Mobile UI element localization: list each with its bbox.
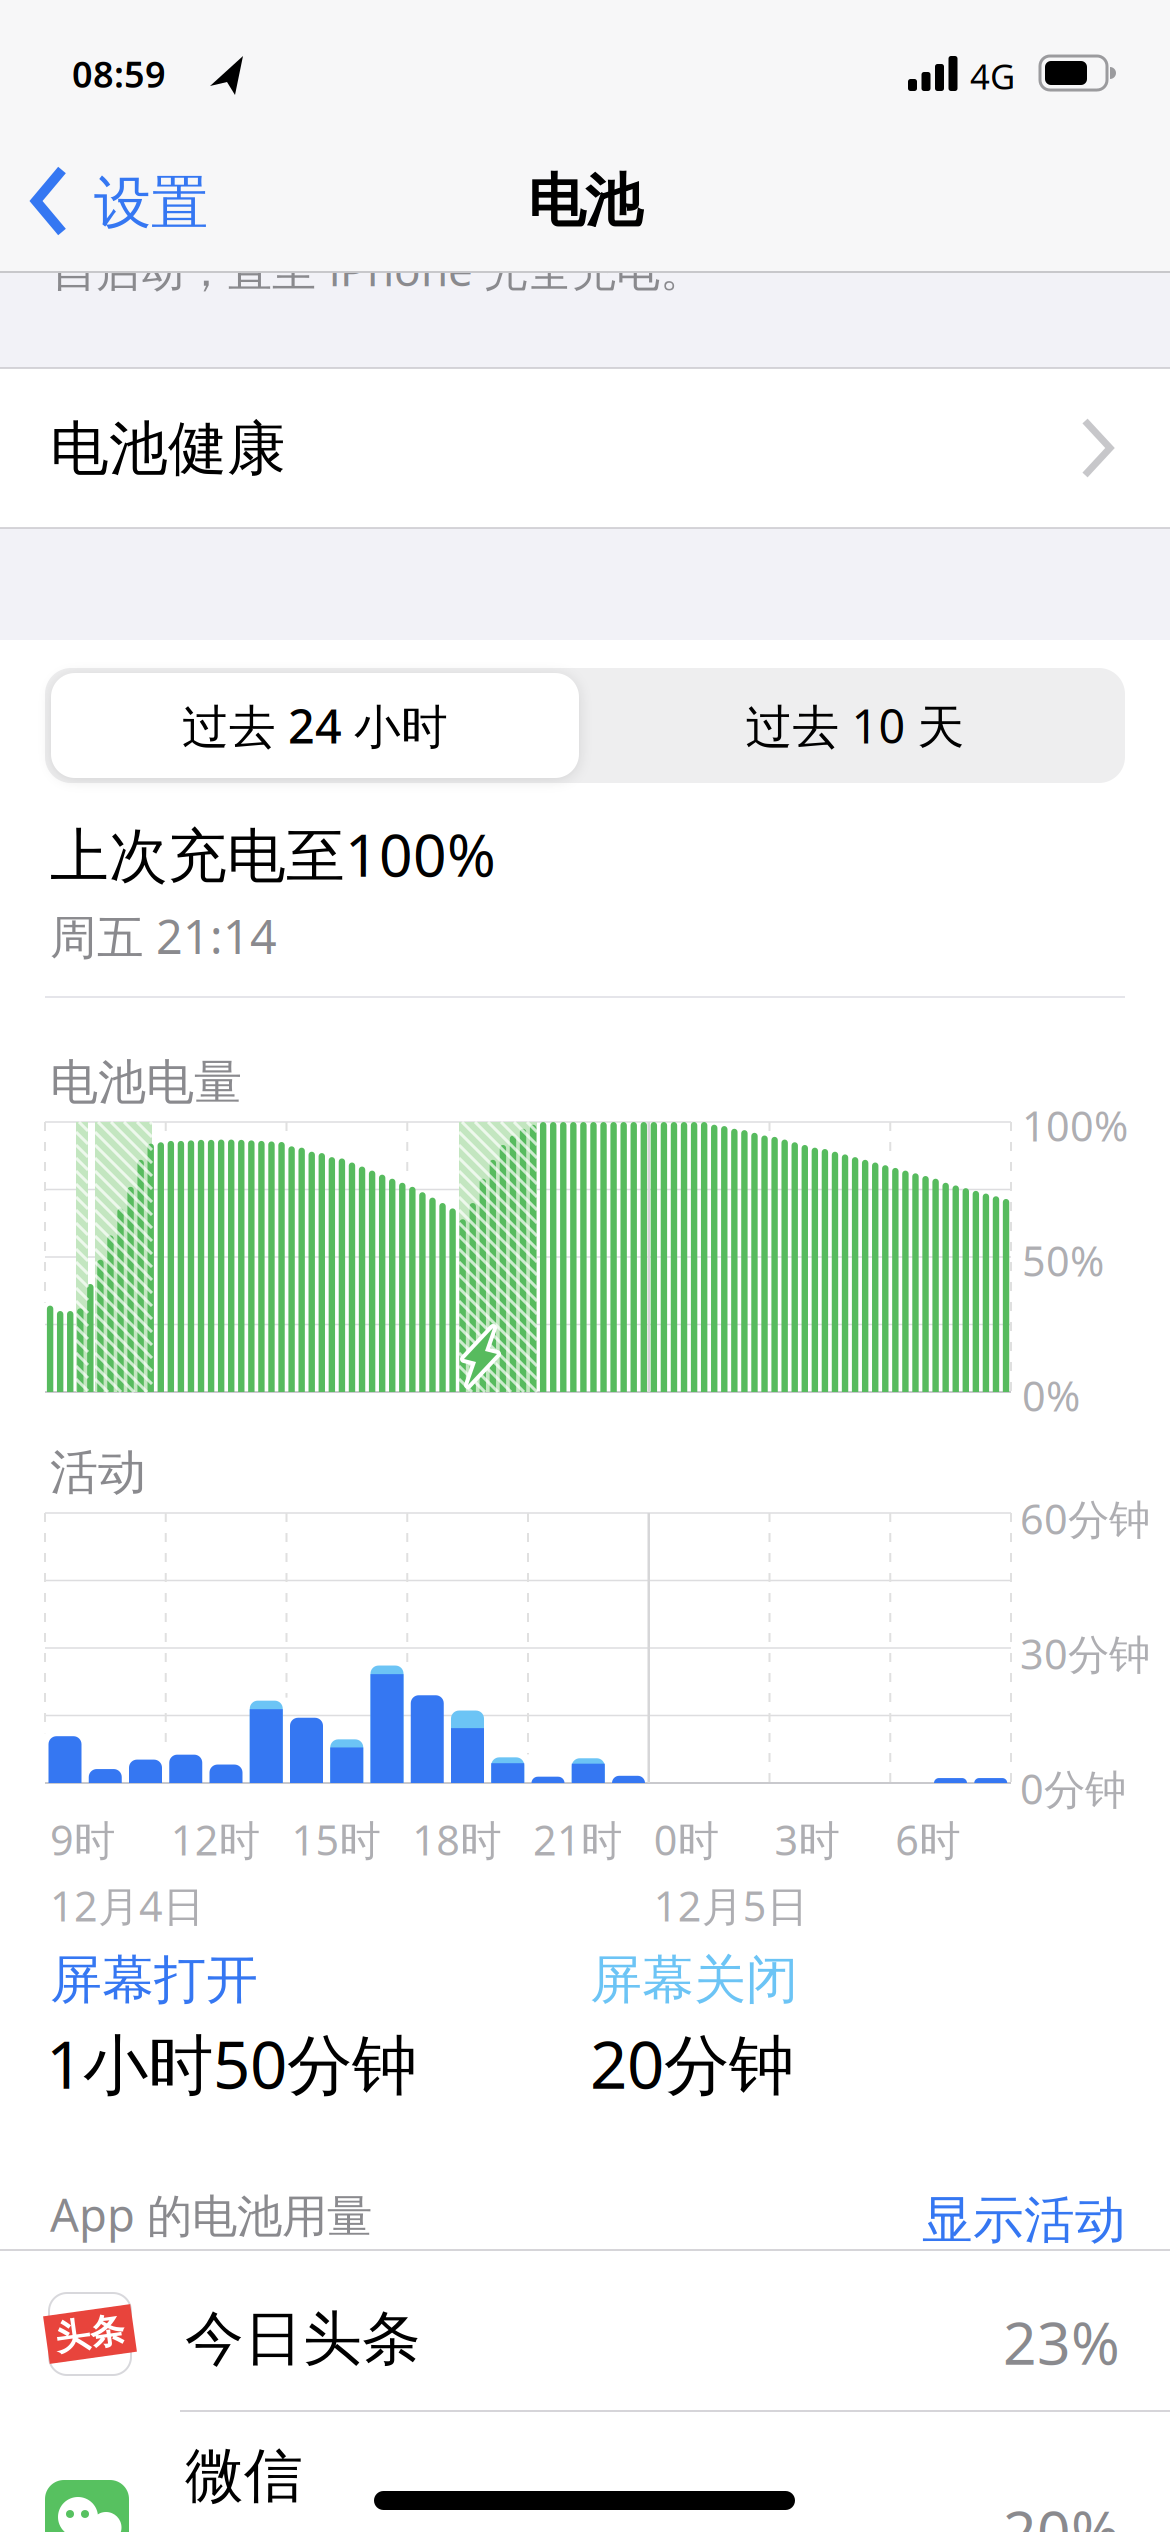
staticText: 20%	[1003, 2492, 1120, 2532]
staticText: 0%	[1022, 1368, 1080, 1423]
staticText: 屏幕打开	[50, 1948, 258, 2012]
staticText: 电池电量	[50, 1053, 242, 1112]
button[interactable]: 微信	[0, 2411, 1170, 2532]
staticText: 6时	[895, 1812, 960, 1867]
staticText: 23%	[1003, 2303, 1120, 2381]
staticText: 50%	[1022, 1233, 1104, 1288]
staticText: 08:59	[72, 50, 166, 98]
staticText: 微信	[185, 2440, 303, 2512]
button[interactable]: 过去 10 天	[585, 668, 1125, 783]
staticText: 活动	[50, 1443, 146, 1502]
staticText: 100%	[1022, 1098, 1128, 1153]
staticText: 0时	[654, 1812, 719, 1867]
staticText: 21时	[533, 1812, 622, 1867]
staticText: 周五 21:14	[50, 905, 277, 967]
staticText: 今日头条	[185, 2303, 421, 2375]
staticText: 过去 10 天	[745, 694, 964, 756]
staticText: 0分钟	[1020, 1761, 1126, 1816]
staticText: 电池健康	[50, 413, 286, 485]
staticText: 12月4日	[50, 1878, 204, 1933]
staticText: 显示活动	[922, 2189, 1126, 2251]
staticText: 4G	[970, 53, 1015, 99]
staticText: 12月5日	[654, 1878, 808, 1933]
staticText: 过去 24 小时	[182, 694, 448, 756]
staticText: 1小时50分钟	[46, 2020, 417, 2107]
staticText: 屏幕关闭	[590, 1948, 798, 2012]
staticText: 15时	[291, 1812, 380, 1867]
button[interactable]: 返回设置	[28, 146, 238, 258]
staticText: 30分钟	[1020, 1626, 1150, 1681]
staticText: 自启动，直至 iPhone 完全充电。	[52, 240, 704, 298]
button[interactable]: 电池健康	[0, 368, 1170, 528]
button[interactable]: 显示活动	[922, 2189, 1126, 2251]
staticText: 设置	[94, 168, 208, 238]
staticText: 12时	[171, 1812, 260, 1867]
staticText: App 的电池用量	[50, 2184, 372, 2244]
button[interactable]: 过去 24 小时	[45, 668, 585, 783]
staticText: 上次充电至100%	[50, 815, 496, 893]
staticText: 20分钟	[590, 2020, 794, 2107]
staticText: 3时	[774, 1812, 839, 1867]
staticText: 电池	[528, 166, 642, 236]
staticText: 60分钟	[1020, 1491, 1150, 1546]
button[interactable]: 头条	[0, 2250, 1170, 2411]
staticText: 18时	[412, 1812, 501, 1867]
staticText: 9时	[50, 1812, 115, 1867]
staticText: 头条	[55, 2313, 125, 2355]
